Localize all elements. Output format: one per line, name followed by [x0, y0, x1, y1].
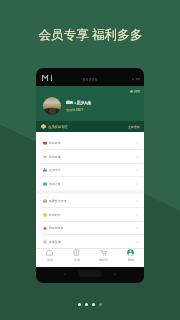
staticText: 立即查看 — [128, 125, 140, 129]
staticText: 我的钱包 — [49, 141, 61, 145]
button[interactable]: 会员权益专区 — [36, 121, 144, 132]
button[interactable]: 我的 — [117, 249, 144, 262]
button[interactable]: 首页 — [36, 249, 63, 262]
button[interactable]: 我的积分 — [36, 208, 144, 222]
button[interactable]: 我的优惠券 — [36, 221, 144, 235]
button[interactable]: 我的收藏 — [36, 150, 144, 164]
button[interactable]: 会员中心 — [36, 163, 144, 177]
staticText: 会员专享 福利多多 — [38, 26, 143, 43]
staticText: 分类 — [74, 258, 80, 262]
button[interactable]: 购物车 — [90, 249, 117, 262]
staticText: 客服反馈 — [49, 240, 61, 244]
staticText: 首页 — [47, 258, 53, 262]
staticText: 我的收藏 — [49, 155, 61, 159]
staticText: 设置 — [134, 89, 140, 93]
button[interactable]: Settings — [129, 88, 141, 94]
staticText: 会员权益专区 — [48, 125, 68, 129]
staticText: 免费安全管理 — [49, 199, 67, 203]
button[interactable]: 分类 — [63, 249, 90, 262]
button[interactable]: 客服反馈 — [36, 235, 144, 249]
staticText: 会员码 8807 — [66, 108, 84, 112]
staticText: 会员中心 — [49, 168, 61, 172]
staticText: 我的优惠券 — [49, 226, 64, 230]
staticText: 我的积分 — [49, 213, 61, 217]
staticText: 昵称：正少人生 — [66, 101, 92, 106]
button[interactable]: 我的订单 — [36, 177, 144, 191]
staticText: 我的订单 — [49, 182, 61, 186]
staticText: 购物车 — [99, 258, 108, 262]
button[interactable]: 免费安全管理 — [36, 194, 144, 208]
staticText: 我的 — [128, 258, 134, 262]
button[interactable]: 我的钱包 — [36, 136, 144, 150]
